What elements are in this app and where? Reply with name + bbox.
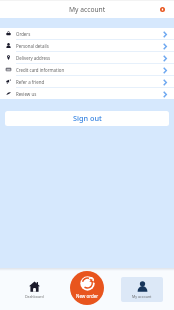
button[interactable]: Orders bbox=[0, 28, 174, 39]
button[interactable]: Credit card information bbox=[0, 64, 174, 75]
staticText: Personal details bbox=[16, 43, 49, 49]
button[interactable]: Refer a friend bbox=[0, 76, 174, 87]
staticText: My account bbox=[69, 5, 106, 14]
staticText: My account bbox=[132, 294, 152, 299]
staticText: Orders bbox=[16, 31, 31, 37]
button[interactable]: Sign out bbox=[5, 111, 169, 126]
staticText: Sign out bbox=[73, 113, 102, 123]
button[interactable]: Review us bbox=[0, 88, 174, 99]
staticText: Refer a friend bbox=[16, 79, 45, 85]
staticText: Dashboard bbox=[25, 294, 44, 299]
staticText: New order bbox=[76, 293, 99, 299]
button[interactable]: Personal details bbox=[0, 40, 174, 51]
staticText: Credit card information bbox=[16, 67, 65, 73]
button[interactable]: Dashboard bbox=[13, 277, 55, 302]
button[interactable]: New order bbox=[70, 271, 104, 305]
staticText: Delivery address bbox=[16, 55, 51, 61]
staticText: Review us bbox=[16, 91, 37, 97]
button[interactable]: My account bbox=[121, 277, 163, 302]
button[interactable]: Delivery address bbox=[0, 52, 174, 63]
button[interactable]: Basket bbox=[155, 2, 169, 16]
